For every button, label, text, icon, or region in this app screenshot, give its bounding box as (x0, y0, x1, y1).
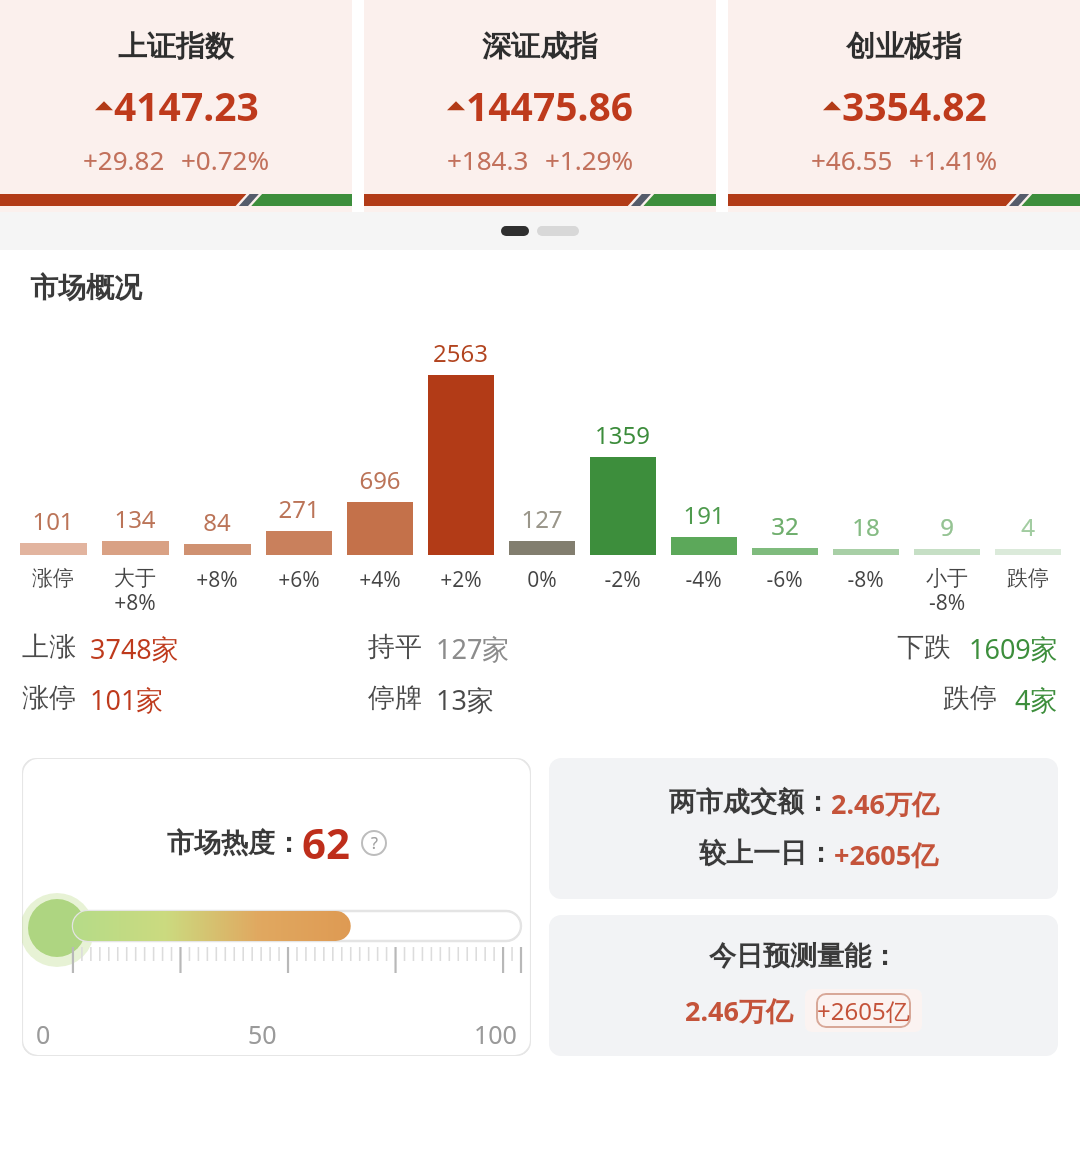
button[interactable]: 两市成交额： (549, 758, 1058, 899)
staticText: 101家 (90, 681, 164, 718)
button[interactable]: 上证指数 (0, 0, 352, 212)
staticText: 跌停 (943, 681, 997, 715)
button[interactable]: 上涨 (22, 630, 368, 667)
staticText: -8% (847, 565, 884, 594)
button[interactable]: 市场热度： (22, 758, 531, 1056)
staticText: 深证成指 (482, 28, 598, 65)
staticText: 3748家 (90, 630, 179, 667)
staticText: +1.29% (545, 142, 634, 177)
button[interactable]: 涨停 (22, 681, 368, 718)
staticText: 2563 (433, 336, 488, 369)
staticText: 0% (527, 565, 557, 594)
staticText: +2% (440, 565, 482, 594)
staticText: 101 (32, 504, 74, 537)
staticText: 191 (683, 498, 725, 531)
staticText: +184.3 (447, 142, 529, 177)
button[interactable]: 深证成指 (364, 0, 716, 212)
staticText: 创业板指 (846, 28, 962, 65)
staticText: 跌停 (1007, 565, 1049, 591)
staticText: 较上一日： (699, 836, 834, 870)
staticText: 上证指数 (118, 28, 234, 65)
staticText: 50 (248, 1017, 277, 1051)
staticText: +1.41% (909, 142, 998, 177)
staticText: +2605亿 (817, 994, 910, 1027)
staticText: 涨停 (22, 681, 76, 715)
staticText: 4家 (1015, 681, 1058, 718)
button[interactable]: Page 1 (501, 226, 529, 236)
staticText: 今日预测量能： (709, 939, 898, 973)
button[interactable]: 今日预测量能： (549, 915, 1058, 1056)
staticText: 小于 -8% (926, 565, 968, 616)
staticText: 9 (940, 510, 954, 543)
button[interactable]: 跌停 (713, 681, 1058, 718)
staticText: +4% (359, 565, 401, 594)
staticText: 2.46万亿 (831, 785, 939, 822)
staticText: 市场热度： (167, 826, 302, 860)
staticText: +29.82 (83, 142, 165, 177)
staticText: 134 (114, 502, 156, 535)
staticText: 下跌 (897, 630, 951, 664)
staticText: -2% (604, 565, 641, 594)
staticText: 持平 (368, 630, 422, 664)
staticText: 4 (1021, 510, 1035, 543)
button[interactable]: 创业板指 (728, 0, 1080, 212)
staticText: 14475.86 (466, 79, 634, 132)
staticText: 1359 (595, 418, 650, 451)
staticText: 100 (474, 1017, 517, 1051)
staticText: 3354.82 (842, 79, 987, 132)
staticText: 4147.23 (114, 79, 259, 132)
staticText: 271 (278, 492, 320, 525)
staticText: 停牌 (368, 681, 422, 715)
staticText: -6% (766, 565, 803, 594)
staticText: ? (371, 832, 378, 854)
button[interactable]: Page 2 (537, 226, 579, 236)
staticText: 127 (521, 502, 563, 535)
staticText: 32 (771, 509, 799, 542)
button[interactable]: 下跌 (713, 630, 1058, 667)
staticText: 696 (359, 463, 401, 496)
staticText: 84 (203, 505, 231, 538)
button[interactable]: 持平 (368, 630, 713, 667)
staticText: +8% (196, 565, 238, 594)
staticText: 18 (852, 510, 880, 543)
staticText: 市场概况 (30, 270, 142, 305)
staticText: 两市成交额： (669, 785, 831, 819)
staticText: 62 (302, 814, 351, 871)
staticText: 大于 +8% (114, 565, 156, 616)
staticText: 0 (36, 1017, 51, 1051)
button[interactable]: Help (361, 830, 387, 856)
staticText: 1609家 (969, 630, 1058, 667)
staticText: +6% (278, 565, 320, 594)
staticText: 127家 (436, 630, 510, 667)
staticText: 涨停 (32, 565, 74, 591)
staticText: 上涨 (22, 630, 76, 664)
staticText: -4% (685, 565, 722, 594)
button[interactable]: 停牌 (368, 681, 713, 718)
staticText: +0.72% (181, 142, 270, 177)
staticText: 2.46万亿 (685, 992, 793, 1029)
staticText: 13家 (436, 681, 494, 718)
staticText: +2605亿 (834, 836, 939, 873)
staticText: +46.55 (811, 142, 893, 177)
